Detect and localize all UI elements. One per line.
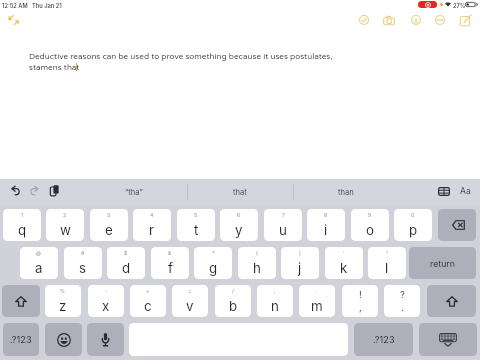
button[interactable]: : bbox=[299, 285, 335, 317]
button[interactable]: .?123 bbox=[354, 323, 413, 356]
button[interactable]: ! bbox=[342, 285, 378, 317]
staticText: u bbox=[279, 222, 287, 238]
button[interactable]: “tha” bbox=[80, 179, 187, 205]
button[interactable]: Shift bbox=[2, 285, 40, 317]
staticText: ; bbox=[274, 288, 276, 294]
button[interactable]: Insert table bbox=[438, 187, 450, 196]
staticText: ) bbox=[299, 250, 301, 256]
staticText: Deductive reasons can be used to prove s… bbox=[29, 51, 333, 61]
button[interactable]: Hide keyboard bbox=[419, 323, 477, 356]
staticText: ” bbox=[386, 250, 389, 256]
staticText: * bbox=[212, 250, 215, 256]
staticText: 12:52 AM bbox=[2, 2, 28, 9]
button[interactable]: that bbox=[187, 179, 293, 205]
staticText: j bbox=[298, 260, 302, 276]
staticText: ( bbox=[256, 250, 258, 256]
staticText: 9 bbox=[368, 212, 372, 218]
staticText: = bbox=[188, 288, 192, 294]
staticText: v bbox=[186, 298, 194, 314]
button[interactable]: Paste bbox=[50, 185, 59, 196]
staticText: # bbox=[81, 250, 85, 256]
button[interactable]: 2 bbox=[46, 209, 84, 241]
staticText: 27% bbox=[453, 2, 466, 9]
staticText: , bbox=[359, 302, 362, 313]
button[interactable]: Dictate bbox=[87, 323, 124, 356]
button[interactable]: ) bbox=[281, 247, 319, 279]
staticText: y bbox=[235, 222, 243, 238]
button[interactable]: Aa bbox=[459, 184, 471, 198]
staticText: b bbox=[229, 298, 238, 314]
staticText: d bbox=[122, 260, 131, 276]
staticText: k bbox=[340, 260, 348, 276]
staticText: Thu Jan 21 bbox=[32, 2, 62, 9]
button[interactable]: Collapse bbox=[7, 14, 20, 27]
button[interactable]: 6 bbox=[220, 209, 258, 241]
button[interactable]: % bbox=[45, 285, 81, 317]
button[interactable]: Compose bbox=[460, 15, 471, 26]
button[interactable]: 3 bbox=[90, 209, 128, 241]
staticText: i bbox=[324, 222, 328, 238]
button[interactable]: 1 bbox=[3, 209, 41, 241]
button[interactable]: than bbox=[293, 179, 399, 205]
staticText: $ bbox=[124, 250, 128, 256]
staticText: f bbox=[168, 260, 173, 276]
button[interactable]: Emoji bbox=[45, 323, 82, 356]
button[interactable]: Undo bbox=[11, 186, 20, 195]
staticText: s bbox=[79, 260, 87, 276]
staticText: n bbox=[271, 298, 279, 314]
staticText: “tha” bbox=[125, 188, 143, 197]
staticText: 8 bbox=[324, 212, 328, 218]
staticText: h bbox=[253, 260, 261, 276]
staticText: 4 bbox=[150, 212, 154, 218]
button[interactable]: ? bbox=[384, 285, 420, 317]
staticText: % bbox=[60, 288, 66, 294]
staticText: 6 bbox=[237, 212, 241, 218]
button[interactable]: ( bbox=[238, 247, 276, 279]
staticText: c bbox=[144, 298, 152, 314]
button[interactable]: ‘ bbox=[325, 247, 363, 279]
button[interactable]: 8 bbox=[307, 209, 345, 241]
staticText: that bbox=[233, 188, 247, 197]
staticText: than bbox=[338, 188, 354, 197]
button[interactable]: Shift bbox=[427, 285, 476, 317]
button[interactable]: Markup bbox=[411, 15, 421, 25]
staticText: m bbox=[311, 298, 323, 314]
button[interactable]: * bbox=[194, 247, 232, 279]
button[interactable]: @ bbox=[20, 247, 58, 279]
button[interactable]: / bbox=[215, 285, 251, 317]
staticText: ‘ bbox=[343, 250, 345, 256]
staticText: q bbox=[18, 222, 27, 238]
staticText: r bbox=[149, 222, 155, 238]
button[interactable]: ; bbox=[257, 285, 293, 317]
button[interactable]: & bbox=[151, 247, 189, 279]
staticText: 3 bbox=[107, 212, 111, 218]
staticText: 2 bbox=[63, 212, 67, 218]
staticText: 0 bbox=[411, 212, 415, 218]
staticText: p bbox=[409, 222, 418, 238]
button[interactable]: Done bbox=[359, 15, 369, 25]
button[interactable]: + bbox=[130, 285, 166, 317]
button[interactable]: 5 bbox=[177, 209, 215, 241]
button[interactable]: 7 bbox=[264, 209, 302, 241]
staticText: l bbox=[385, 260, 389, 276]
button[interactable]: ” bbox=[368, 247, 406, 279]
staticText: ! bbox=[359, 289, 362, 300]
button[interactable]: 0 bbox=[394, 209, 432, 241]
button[interactable]: More bbox=[435, 15, 445, 25]
button[interactable]: Redo bbox=[30, 186, 39, 195]
staticText: : bbox=[316, 288, 318, 294]
button[interactable]: 4 bbox=[133, 209, 171, 241]
staticText: Aa bbox=[460, 186, 471, 196]
button[interactable]: Camera bbox=[383, 16, 395, 25]
button[interactable]: return bbox=[409, 247, 476, 279]
staticText: x bbox=[102, 298, 110, 314]
button[interactable]: $ bbox=[107, 247, 145, 279]
button[interactable]: = bbox=[172, 285, 208, 317]
staticText: a bbox=[35, 260, 43, 276]
button[interactable]: 9 bbox=[351, 209, 389, 241]
button[interactable]: Delete bbox=[438, 209, 476, 241]
button[interactable]: # bbox=[64, 247, 102, 279]
button[interactable]: - bbox=[88, 285, 124, 317]
button[interactable]: .?123 bbox=[3, 323, 39, 356]
